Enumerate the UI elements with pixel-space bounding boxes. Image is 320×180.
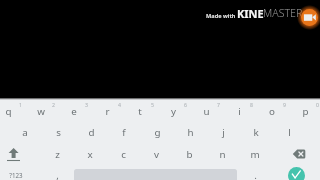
button[interactable]: n xyxy=(207,145,237,163)
button[interactable]: o xyxy=(257,102,287,120)
staticText: s xyxy=(56,126,61,139)
button[interactable]: 5 xyxy=(147,95,157,113)
staticText: ?123 xyxy=(9,171,23,179)
staticText: j xyxy=(222,126,225,139)
button[interactable]: 2 xyxy=(48,95,58,113)
staticText: 8 xyxy=(250,101,253,108)
button[interactable]: Enter xyxy=(288,167,305,180)
staticText: g xyxy=(154,126,161,139)
button[interactable]: ?123 xyxy=(5,166,27,180)
staticText: z xyxy=(55,148,60,161)
button[interactable]: b xyxy=(174,145,204,163)
button[interactable]: d xyxy=(76,123,106,141)
button[interactable]: x xyxy=(75,145,105,163)
button[interactable]: u xyxy=(191,102,221,120)
staticText: Made with xyxy=(206,12,236,20)
button[interactable]: f xyxy=(109,123,139,141)
staticText: p xyxy=(302,105,309,118)
staticText: 9 xyxy=(283,101,286,108)
button[interactable]: a xyxy=(10,123,40,141)
staticText: 1 xyxy=(19,101,22,108)
button[interactable]: r xyxy=(92,102,122,120)
staticText: 2 xyxy=(52,101,55,108)
button[interactable]: 6 xyxy=(180,95,190,113)
button[interactable]: q xyxy=(0,102,23,120)
button[interactable]: m xyxy=(240,145,270,163)
button[interactable]: Shift xyxy=(0,143,28,165)
staticText: i xyxy=(238,105,241,118)
button[interactable]: l xyxy=(274,123,304,141)
staticText: n xyxy=(219,148,226,161)
staticText: h xyxy=(187,126,194,139)
button[interactable]: t xyxy=(125,102,155,120)
staticText: k xyxy=(253,126,259,139)
staticText: t xyxy=(138,105,142,118)
staticText: l xyxy=(288,126,291,139)
staticText: 5 xyxy=(151,101,154,108)
staticText: b xyxy=(186,148,193,161)
button[interactable]: v xyxy=(141,145,171,163)
staticText: 3 xyxy=(85,101,88,108)
staticText: MASTER xyxy=(263,6,303,20)
button[interactable]: w xyxy=(26,102,56,120)
button[interactable]: 8 xyxy=(246,95,256,113)
staticText: c xyxy=(121,148,126,161)
staticText: a xyxy=(22,126,28,139)
staticText: u xyxy=(203,105,210,118)
staticText: 7 xyxy=(217,101,220,108)
staticText: KINE xyxy=(237,6,264,21)
staticText: 4 xyxy=(118,101,121,108)
button[interactable]: . xyxy=(240,166,270,180)
button[interactable]: p xyxy=(290,102,320,120)
staticText: y xyxy=(171,105,176,118)
button[interactable]: y xyxy=(158,102,188,120)
button[interactable]: 7 xyxy=(213,95,223,113)
staticText: . xyxy=(254,169,257,180)
staticText: o xyxy=(269,105,275,118)
button[interactable]: 0 xyxy=(312,95,320,113)
button[interactable]: k xyxy=(241,123,271,141)
staticText: m xyxy=(250,148,260,161)
button[interactable]: s xyxy=(43,123,73,141)
staticText: w xyxy=(37,105,45,118)
staticText: r xyxy=(105,105,110,118)
button[interactable]: 1 xyxy=(15,95,25,113)
button[interactable]: c xyxy=(108,145,138,163)
button[interactable]: i xyxy=(224,102,254,120)
staticText: x xyxy=(87,148,93,161)
button[interactable]: 4 xyxy=(114,95,124,113)
staticText: q xyxy=(5,105,12,118)
button[interactable]: 3 xyxy=(81,95,91,113)
button[interactable]: 9 xyxy=(279,95,289,113)
button[interactable]: Backspace xyxy=(288,143,312,165)
button[interactable]: , xyxy=(42,166,72,180)
button[interactable]: h xyxy=(175,123,205,141)
staticText: e xyxy=(71,105,77,118)
staticText: v xyxy=(154,148,159,161)
staticText: , xyxy=(56,169,59,180)
button[interactable]: z xyxy=(42,145,72,163)
button[interactable]: j xyxy=(208,123,238,141)
staticText: 0 xyxy=(316,101,319,108)
button[interactable]: g xyxy=(142,123,172,141)
button[interactable]: e xyxy=(59,102,89,120)
staticText: f xyxy=(122,126,126,139)
staticText: 6 xyxy=(184,101,187,108)
staticText: d xyxy=(88,126,95,139)
